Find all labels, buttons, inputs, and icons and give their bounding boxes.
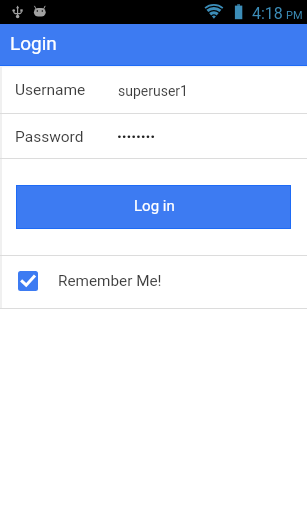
staticText: PM <box>286 9 303 22</box>
other: Remember Me checkbox, checked <box>18 271 38 291</box>
staticText: superuser1 <box>118 83 188 99</box>
button[interactable]: Log in <box>17 186 290 228</box>
button[interactable]: Remember Me checkbox, checked <box>0 256 307 308</box>
staticText: Username <box>15 81 86 99</box>
staticText: Log in <box>134 197 175 215</box>
button[interactable]: Username <box>0 66 307 113</box>
staticText: Remember Me! <box>58 272 162 290</box>
staticText: Login <box>10 32 57 54</box>
button[interactable]: Password <box>0 114 307 158</box>
other: Password <box>116 133 158 139</box>
staticText: Password <box>15 128 84 146</box>
staticText: 4:18 <box>252 4 283 23</box>
